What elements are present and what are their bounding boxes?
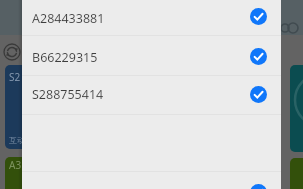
staticText: A284433881 — [32, 10, 105, 27]
button[interactable] — [290, 158, 303, 189]
button[interactable]: Sync — [3, 43, 21, 61]
button[interactable]: A3 — [5, 157, 49, 189]
staticText: 互动 — [9, 135, 25, 145]
button[interactable]: S2 — [5, 65, 49, 149]
staticText: S288755414 — [32, 86, 104, 103]
button[interactable]: A284433881 — [22, 0, 281, 36]
button[interactable]: B66229315 — [22, 36, 281, 76]
staticText: S2 — [9, 70, 21, 84]
staticText: A3 — [9, 158, 22, 172]
button[interactable] — [290, 65, 303, 152]
staticText: B66229315 — [32, 49, 98, 66]
button[interactable]: J6104927366 2931 — [22, 172, 281, 189]
button[interactable]: S288755414 — [22, 75, 281, 114]
